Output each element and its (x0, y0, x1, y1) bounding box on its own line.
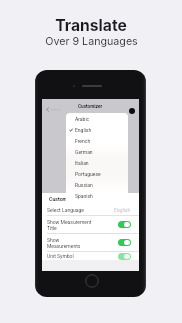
staticText: German (75, 149, 93, 155)
button[interactable]: Back (42, 104, 61, 114)
button[interactable]: Toggle (118, 239, 131, 246)
staticText: English (75, 127, 92, 133)
button[interactable]: Italian (66, 157, 128, 168)
staticText: Show Measurement Title (47, 219, 92, 231)
staticText: Russian (75, 182, 93, 188)
button[interactable]: Close (129, 108, 135, 114)
button[interactable]: Unit Symbol (42, 252, 139, 260)
button[interactable]: Show Measurement Title (42, 216, 139, 233)
staticText: Customizer (78, 104, 103, 110)
staticText: Italian (75, 160, 89, 166)
button[interactable]: Select Language (42, 204, 139, 215)
staticText: Custom (49, 196, 68, 202)
staticText: English (114, 207, 131, 213)
staticText: Translate (55, 16, 127, 35)
staticText: Arabic (75, 116, 90, 122)
staticText: Select Language (47, 207, 84, 213)
staticText: French (75, 138, 91, 144)
button[interactable]: Portuguese (66, 168, 128, 179)
staticText: Portuguese (75, 171, 101, 177)
staticText: Over 9 Languages (45, 35, 138, 48)
button[interactable]: Spanish (66, 190, 128, 201)
staticText: Unit Symbol (47, 253, 74, 259)
button[interactable]: Show Measurements (42, 234, 139, 251)
button[interactable]: English (66, 124, 128, 135)
staticText: Show Measurements (47, 237, 81, 249)
button[interactable]: Toggle (118, 253, 131, 260)
staticText: Spanish (75, 193, 93, 199)
button[interactable]: Home (85, 274, 99, 288)
button[interactable]: French (66, 135, 128, 146)
button[interactable]: Arabic (66, 113, 128, 124)
button[interactable]: Toggle (118, 221, 131, 228)
staticText: Back (51, 107, 61, 112)
button[interactable]: Russian (66, 179, 128, 190)
button[interactable]: German (66, 146, 128, 157)
